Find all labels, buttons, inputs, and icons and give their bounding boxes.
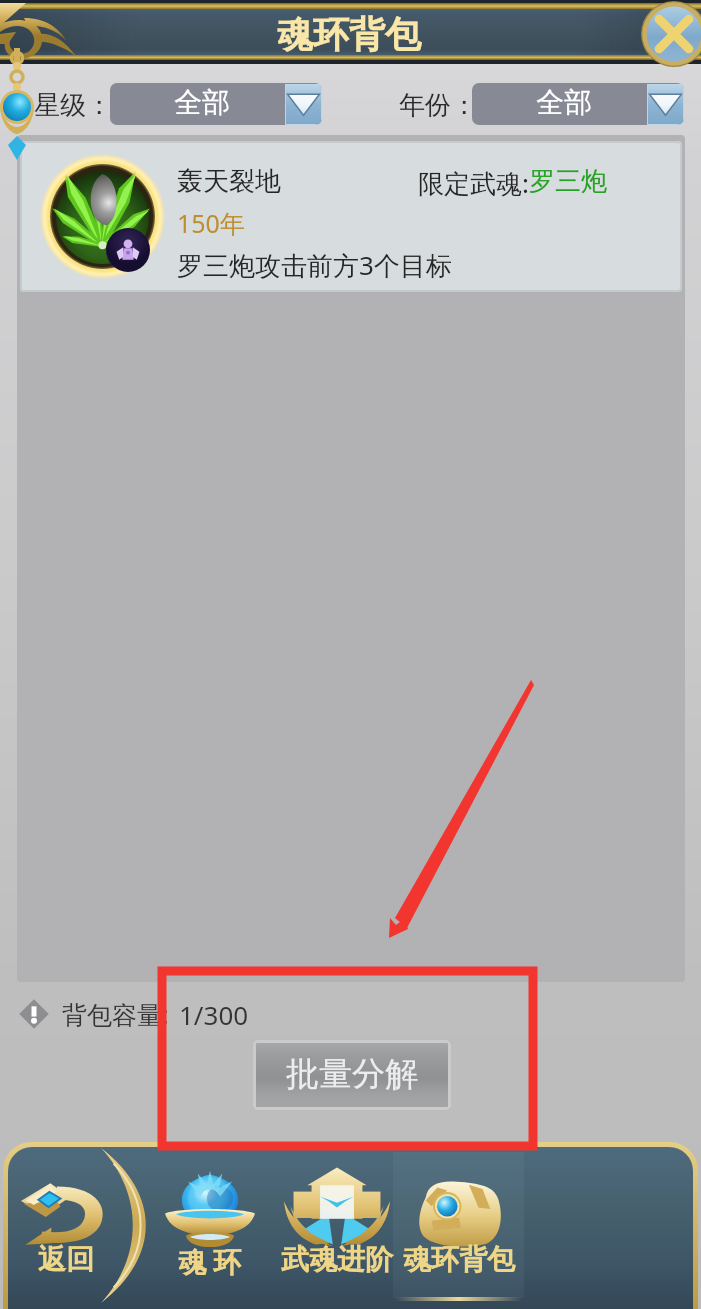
staticText: 魂环背包	[403, 1242, 515, 1277]
staticText: 全部	[536, 85, 592, 120]
button[interactable]: 全部	[110, 83, 322, 125]
staticText: 150年	[177, 206, 245, 240]
button[interactable]: 魂环背包	[393, 1150, 524, 1302]
staticText: 1/300	[179, 997, 249, 1032]
staticText: 批量分解	[286, 1053, 418, 1095]
staticText: 星级：	[34, 89, 112, 122]
button[interactable]: 全部	[472, 83, 684, 125]
staticText: 全部	[174, 85, 230, 120]
button[interactable]: 武魂进阶	[274, 1150, 400, 1302]
staticText: 罗三炮	[529, 165, 607, 198]
button[interactable]: 魂 环	[148, 1150, 272, 1302]
button[interactable]: 返回	[5, 1150, 127, 1302]
staticText: 罗三炮攻击前方3个目标	[177, 247, 452, 283]
staticText: 魂 环	[178, 1242, 242, 1280]
staticText: 限定武魂:	[418, 165, 529, 201]
staticText: 魂环背包	[277, 12, 421, 57]
staticText: 背包容量:	[62, 997, 169, 1031]
staticText: 年份：	[399, 89, 477, 122]
staticText: 返回	[38, 1242, 94, 1277]
button[interactable]: 批量分解	[253, 1040, 451, 1110]
button[interactable]: Close	[641, 1, 701, 67]
button[interactable]: 轰天裂地	[20, 141, 682, 292]
staticText: 轰天裂地	[177, 165, 281, 198]
staticText: 武魂进阶	[281, 1242, 393, 1277]
